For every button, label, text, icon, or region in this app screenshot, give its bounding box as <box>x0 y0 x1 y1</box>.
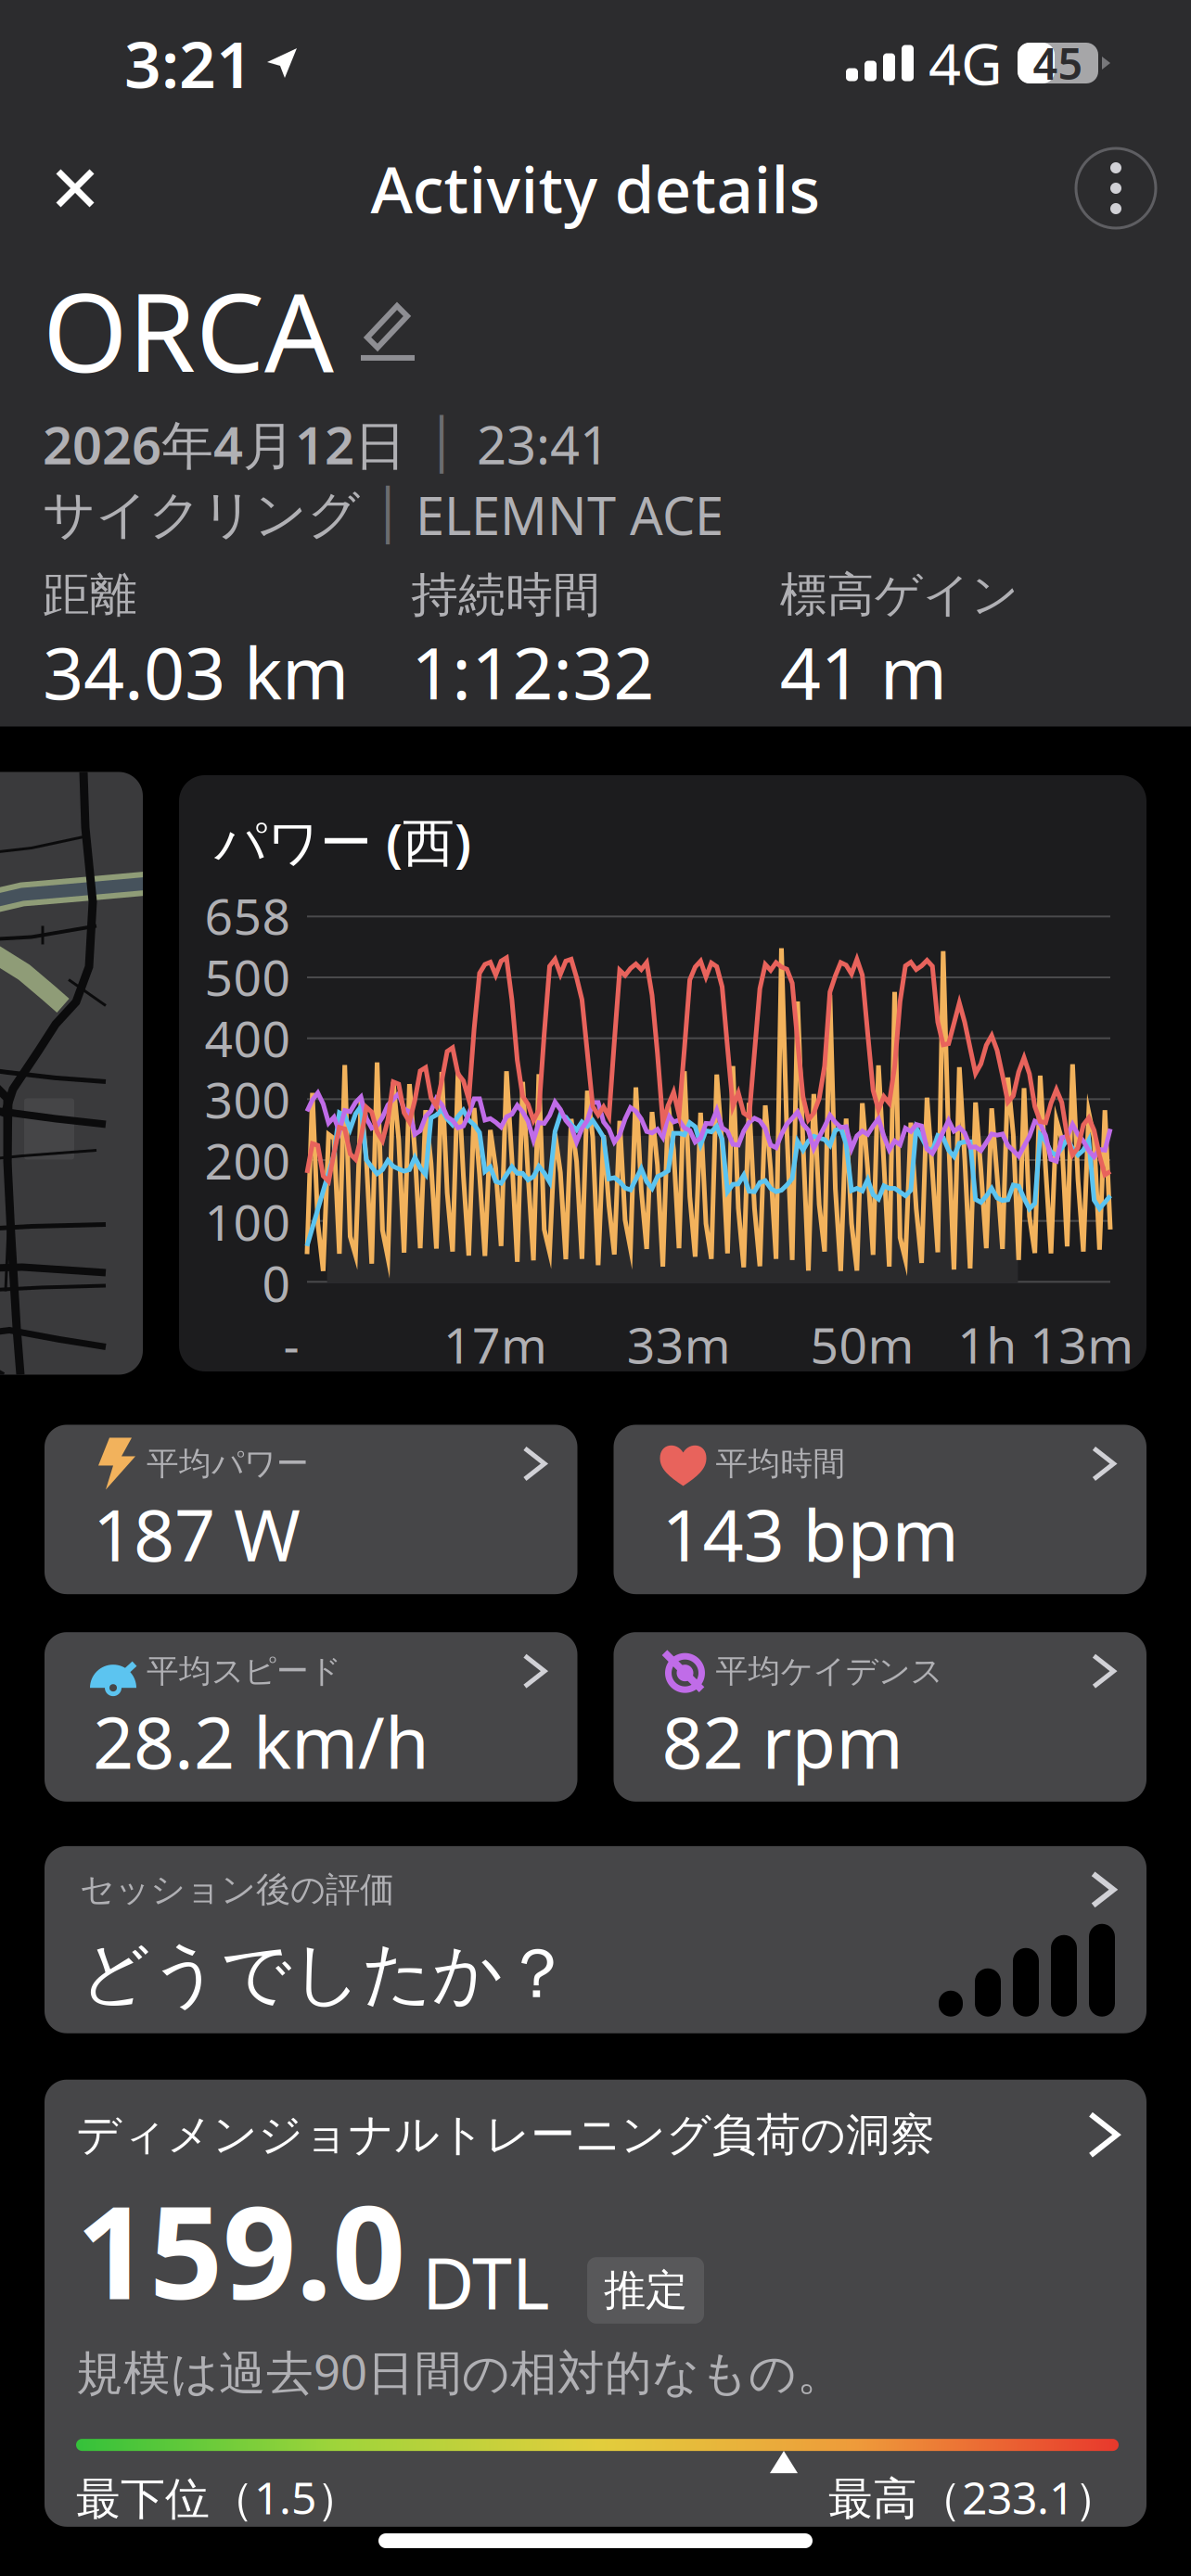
staticText: パワー (西) <box>214 807 471 876</box>
staticText: 187 W <box>93 1486 301 1581</box>
button[interactable]: 平均パワー <box>45 1425 577 1594</box>
staticText: 143 bpm <box>662 1486 959 1581</box>
staticText: 最高（233.1） <box>828 2468 1119 2527</box>
button[interactable]: 平均ケイデンス <box>614 1632 1146 1802</box>
staticText: ELEMNT ACE <box>416 481 724 550</box>
staticText: 平均時間 <box>716 1444 845 1483</box>
staticText: 最下位（1.5） <box>76 2468 361 2527</box>
staticText: 28.2 km/h <box>93 1693 429 1789</box>
staticText: 平均スピード <box>147 1651 341 1691</box>
staticText: 658 <box>205 883 291 948</box>
staticText: ディメンジョナルトレーニング負荷の洞察 <box>76 2107 935 2162</box>
staticText: 3:21 <box>124 20 253 106</box>
staticText: ORCA <box>43 258 334 402</box>
button[interactable]: Close <box>30 143 121 234</box>
staticText: 100 <box>205 1189 291 1254</box>
staticText: 推定 <box>604 2265 687 2316</box>
staticText: サイクリング <box>43 483 360 547</box>
staticText: 規模は過去90日間の相対的なもの。 <box>76 2340 844 2403</box>
staticText: 200 <box>205 1127 291 1193</box>
staticText: 33m <box>627 1311 731 1377</box>
staticText: 平均パワー <box>147 1444 309 1483</box>
staticText: 2026年4月12日 <box>43 410 406 479</box>
staticText: 82 rpm <box>662 1693 903 1789</box>
staticText: 50m <box>810 1311 914 1377</box>
staticText: - <box>283 1311 299 1377</box>
staticText: 159.0 <box>76 2164 405 2335</box>
staticText: 500 <box>205 944 291 1010</box>
staticText: DTL <box>422 2234 550 2329</box>
staticText: 距離 <box>43 566 137 624</box>
staticText: 17m <box>443 1311 547 1377</box>
button[interactable]: Edit activity name <box>358 298 417 362</box>
staticText: 1:12:32 <box>411 624 654 719</box>
staticText: 300 <box>205 1066 291 1132</box>
button[interactable]: ディメンジョナルトレーニング負荷の洞察 <box>45 2080 1146 2527</box>
staticText: │ <box>373 487 403 543</box>
staticText: 平均ケイデンス <box>716 1651 943 1691</box>
button[interactable]: More options <box>1063 135 1169 241</box>
staticText: 1h 13m <box>957 1311 1134 1377</box>
staticText: 4G <box>928 25 1003 101</box>
button[interactable]: セッション後の評価 <box>45 1846 1146 2033</box>
staticText: 45 <box>1033 34 1083 92</box>
staticText: 持続時間 <box>411 566 600 624</box>
staticText: 400 <box>205 1005 291 1071</box>
staticText: │ <box>427 416 456 472</box>
staticText: 41 m <box>780 624 947 719</box>
staticText: Activity details <box>371 146 820 231</box>
staticText: 34.03 km <box>43 624 349 719</box>
staticText: 23:41 <box>477 410 609 479</box>
staticText: どうでしたか？ <box>80 1932 572 2017</box>
staticText: 標高ゲイン <box>780 566 1019 624</box>
staticText: 0 <box>262 1250 291 1316</box>
button[interactable]: 平均スピード <box>45 1632 577 1802</box>
button[interactable]: 平均時間 <box>614 1425 1146 1594</box>
staticText: セッション後の評価 <box>80 1868 394 1911</box>
